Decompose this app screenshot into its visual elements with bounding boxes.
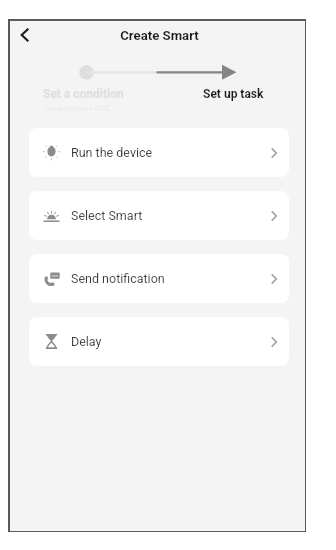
- staticText: Temperature< 40℃: [43, 102, 112, 113]
- staticText: Delay: [71, 334, 102, 349]
- button[interactable]: Delay: [29, 317, 289, 366]
- staticText: Create Smart: [120, 28, 199, 43]
- button[interactable]: Run the device: [29, 128, 289, 177]
- button[interactable]: Back: [11, 23, 39, 51]
- staticText: Set up task: [203, 87, 264, 101]
- button[interactable]: Send notification: [29, 254, 289, 303]
- staticText: Run the device: [71, 145, 153, 160]
- button[interactable]: Select Smart: [29, 191, 289, 240]
- staticText: Set a condition: [43, 87, 124, 101]
- staticText: Select Smart: [71, 208, 143, 223]
- staticText: Send notification: [71, 271, 165, 286]
